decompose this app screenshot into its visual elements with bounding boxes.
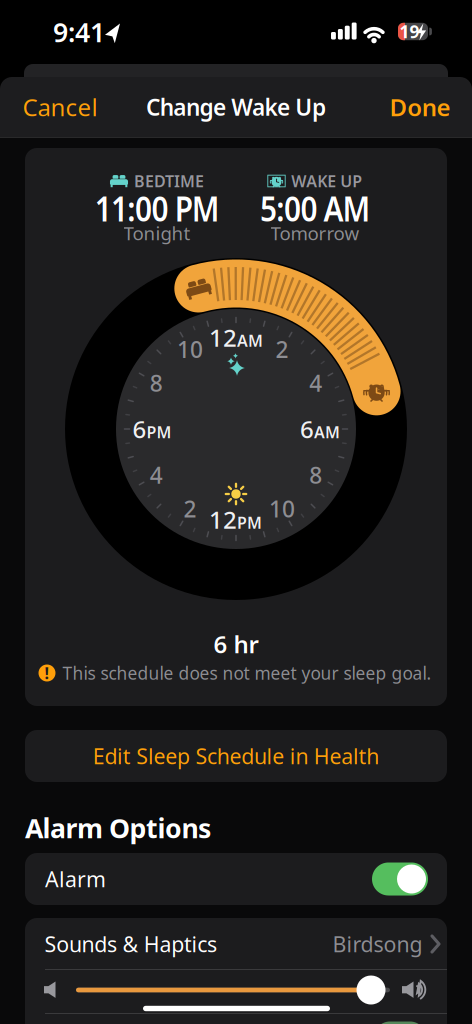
staticText: Done	[390, 91, 450, 123]
button[interactable]: Alarm	[25, 853, 447, 905]
staticText: Tomorrow	[270, 221, 359, 245]
staticText: 2	[275, 334, 288, 364]
staticText: !	[44, 662, 49, 684]
staticText: Change Wake Up	[146, 92, 326, 122]
staticText: 10	[177, 334, 203, 364]
staticText: 12PM	[209, 504, 262, 535]
staticText: 4	[309, 368, 322, 398]
staticText: Birdsong	[332, 930, 422, 958]
staticText: 19	[399, 20, 419, 43]
staticText: 5:00 AM	[251, 185, 379, 231]
button[interactable]: Sounds & Haptics	[44, 918, 440, 969]
button[interactable]: Cancel	[22, 91, 97, 123]
staticText: 6 hr	[213, 628, 258, 660]
staticText: Cancel	[22, 91, 97, 123]
staticText: WAKE UP	[291, 170, 362, 192]
staticText: 4	[150, 460, 163, 490]
staticText: 12AM	[209, 322, 263, 353]
button[interactable]: Done	[390, 91, 450, 123]
staticText: 10	[269, 494, 295, 524]
staticText: 6AM	[300, 413, 340, 445]
staticText: Alarm Options	[25, 810, 211, 846]
staticText: 8	[309, 460, 322, 490]
button[interactable]: Edit Sleep Schedule in Health	[25, 730, 447, 782]
staticText: Edit Sleep Schedule in Health	[93, 742, 379, 770]
staticText: BEDTIME	[134, 170, 204, 192]
staticText: This schedule does not meet your sleep g…	[62, 661, 431, 684]
staticText: Tonight	[123, 221, 190, 245]
staticText: 9:41	[53, 14, 105, 50]
staticText: 6PM	[132, 413, 171, 445]
staticText: Sounds & Haptics	[44, 930, 217, 958]
staticText: 2	[183, 494, 196, 524]
staticText: 8	[150, 368, 163, 398]
staticText: 11:00 PM	[84, 185, 229, 231]
staticText: Alarm	[45, 865, 106, 893]
button[interactable]	[356, 975, 385, 1004]
